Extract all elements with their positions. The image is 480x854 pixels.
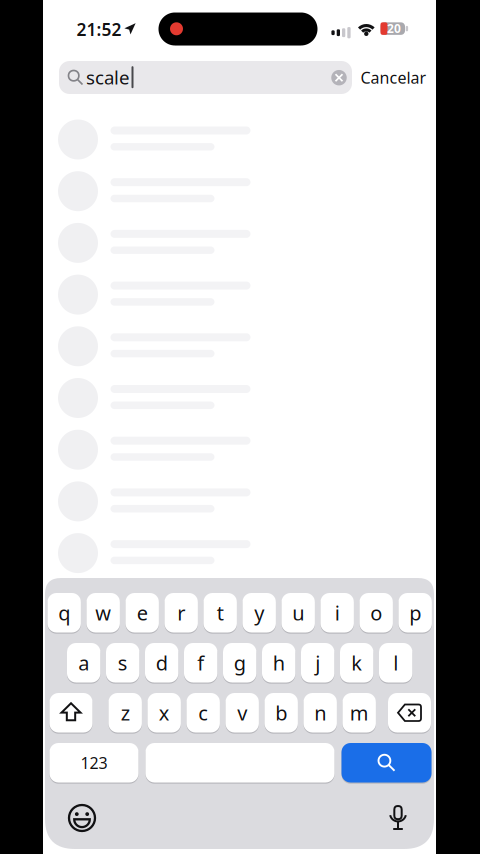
staticText: t <box>217 599 224 626</box>
button[interactable]: i <box>320 592 354 633</box>
staticText: u <box>292 599 304 626</box>
staticText: n <box>314 699 326 726</box>
button[interactable]: h <box>262 642 295 683</box>
button[interactable]: k <box>340 642 373 683</box>
staticText: o <box>370 599 382 626</box>
button[interactable]: b <box>264 692 298 733</box>
staticText: s <box>118 649 128 676</box>
staticText: z <box>121 699 130 726</box>
button[interactable]: e <box>125 592 159 633</box>
staticText: scale <box>86 65 130 90</box>
staticText: g <box>234 649 246 676</box>
button[interactable]: t <box>203 592 237 633</box>
staticText: r <box>177 599 185 626</box>
button[interactable]: s <box>106 642 139 683</box>
button[interactable]: c <box>186 692 220 733</box>
button[interactable]: g <box>223 642 256 683</box>
button[interactable]: u <box>281 592 315 633</box>
staticText: 21:52 <box>76 18 121 41</box>
staticText: y <box>254 599 264 626</box>
button[interactable]: Shift <box>49 692 92 733</box>
staticText: e <box>137 599 148 626</box>
button[interactable]: q <box>47 592 81 633</box>
staticText: Cancelar <box>360 67 426 88</box>
staticText: x <box>159 699 170 726</box>
button[interactable]: d <box>145 642 178 683</box>
button[interactable]: j <box>301 642 334 683</box>
button[interactable] <box>145 742 334 783</box>
staticText: v <box>237 699 247 726</box>
button[interactable]: Search <box>341 742 431 783</box>
button[interactable]: a <box>67 642 100 683</box>
staticText: p <box>409 599 421 626</box>
staticText: f <box>197 649 204 676</box>
staticText: k <box>351 649 362 676</box>
staticText: q <box>58 599 70 626</box>
staticText: 20 <box>387 20 401 36</box>
button[interactable]: Dictation <box>378 798 418 838</box>
button[interactable]: Delete <box>387 692 431 733</box>
button[interactable]: y <box>242 592 276 633</box>
staticText: d <box>156 649 168 676</box>
staticText: i <box>335 599 340 626</box>
staticText: a <box>78 649 89 676</box>
staticText: w <box>95 599 111 626</box>
button[interactable]: z <box>108 692 142 733</box>
staticText: m <box>350 699 369 726</box>
button[interactable]: r <box>164 592 198 633</box>
button[interactable]: m <box>342 692 376 733</box>
staticText: c <box>198 699 208 726</box>
button[interactable]: w <box>86 592 120 633</box>
staticText: 123 <box>80 752 107 773</box>
button[interactable]: x <box>147 692 181 733</box>
button[interactable]: n <box>303 692 337 733</box>
button[interactable]: 123 <box>49 742 138 783</box>
staticText: l <box>393 649 398 676</box>
button[interactable]: o <box>359 592 393 633</box>
button[interactable]: v <box>225 692 259 733</box>
button[interactable]: Cancelar <box>360 67 426 88</box>
button[interactable]: l <box>379 642 412 683</box>
button[interactable]: Clear text <box>329 68 349 88</box>
staticText: h <box>273 649 285 676</box>
button[interactable]: f <box>184 642 217 683</box>
button[interactable]: Emoji <box>62 798 102 838</box>
staticText: b <box>275 699 287 726</box>
button[interactable]: p <box>398 592 432 633</box>
staticText: j <box>315 649 320 676</box>
